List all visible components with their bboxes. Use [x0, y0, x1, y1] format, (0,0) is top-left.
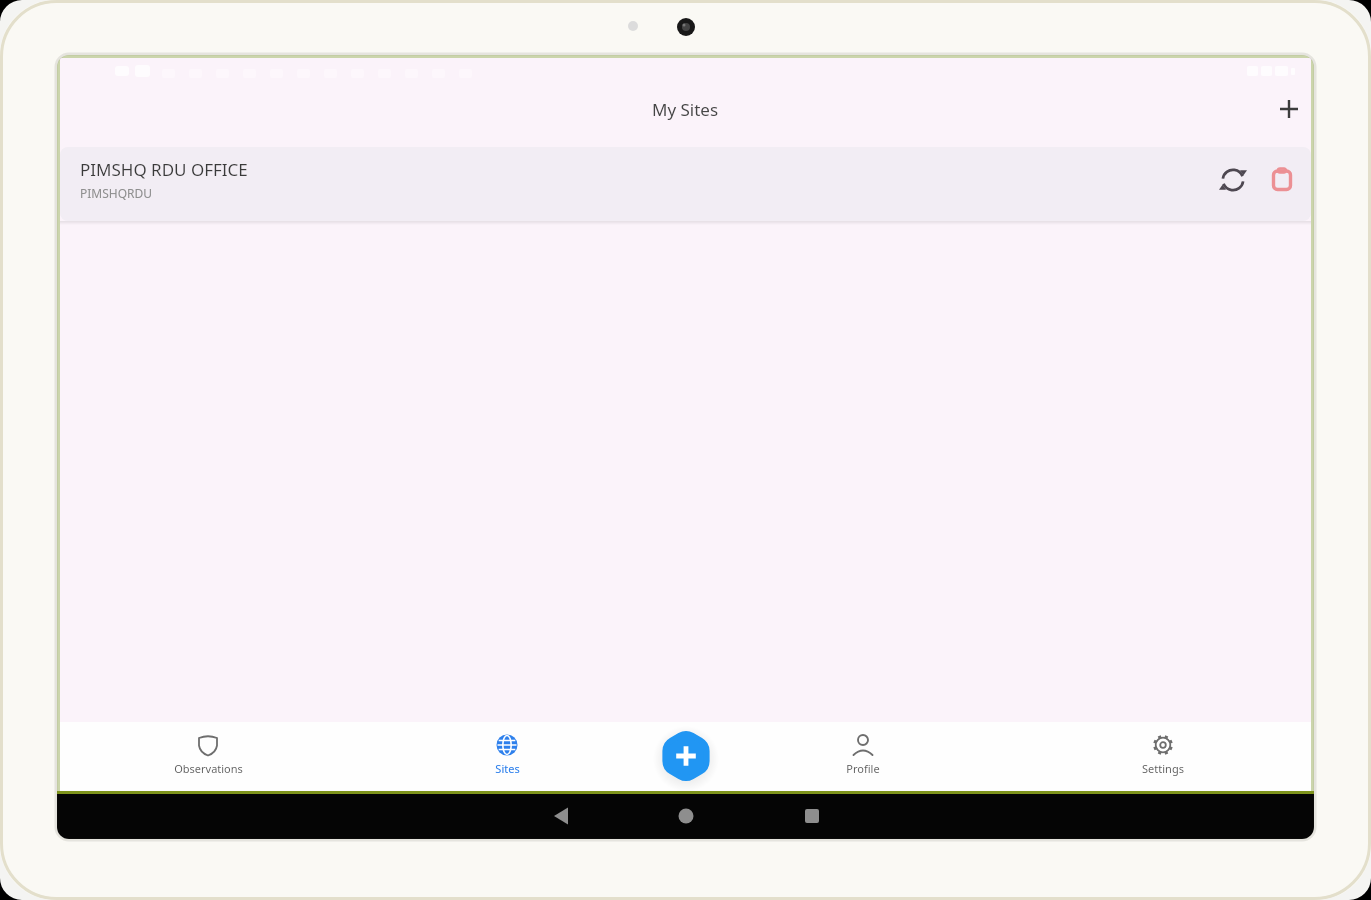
staticText: Profile: [846, 761, 880, 776]
staticText: My Sites: [652, 98, 719, 121]
button[interactable]: [1266, 164, 1298, 196]
button[interactable]: Profile: [808, 733, 918, 776]
button[interactable]: Observations: [153, 733, 263, 776]
button[interactable]: [653, 723, 719, 789]
staticText: PIMSHQ RDU OFFICE: [80, 158, 248, 181]
button[interactable]: [1275, 95, 1303, 123]
staticText: Settings: [1142, 761, 1184, 776]
staticText: Sites: [495, 761, 520, 776]
button[interactable]: Settings: [1108, 733, 1218, 776]
staticText: PIMSHQRDU: [80, 185, 153, 201]
button[interactable]: Sites: [452, 733, 562, 776]
button[interactable]: [1217, 164, 1249, 196]
staticText: Observations: [174, 761, 243, 776]
button[interactable]: PIMSHQ RDU OFFICE: [60, 147, 1311, 221]
